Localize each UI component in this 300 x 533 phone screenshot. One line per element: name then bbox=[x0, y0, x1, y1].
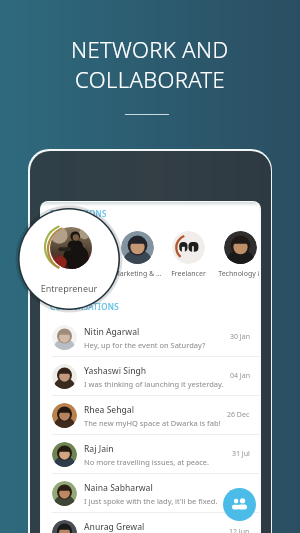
staticText: Naina Sabharwal bbox=[84, 482, 153, 494]
button[interactable]: Anurag Grewal bbox=[41, 513, 259, 533]
staticText: Hey, up for the event on Saturday? bbox=[84, 340, 206, 350]
button[interactable]: Technology & bbox=[214, 231, 259, 279]
staticText: I just spoke with the lady, it'll be fix… bbox=[84, 496, 218, 506]
staticText: 30 Jan bbox=[230, 332, 250, 342]
staticText: Marketing & ... bbox=[113, 269, 162, 279]
staticText: 26 Dec bbox=[227, 410, 250, 420]
staticText: Raj Jain bbox=[84, 443, 114, 455]
staticText: PROFESSIONS bbox=[50, 208, 107, 219]
button[interactable]: Nitin Agarwal bbox=[41, 318, 259, 357]
staticText: No more travelling issues, at peace. bbox=[84, 457, 210, 467]
staticText: 24 Jun bbox=[229, 488, 250, 498]
button[interactable]: New group bbox=[223, 488, 256, 521]
staticText: I was thinking of launching it yesterday… bbox=[84, 379, 224, 389]
staticText: Entrepreneur bbox=[39, 282, 99, 294]
button[interactable]: Rhea Sehgal bbox=[41, 396, 259, 435]
staticText: Rhea Sehgal bbox=[84, 404, 134, 416]
button[interactable] bbox=[50, 227, 92, 269]
button[interactable]: Yashaswi Singh bbox=[41, 357, 259, 396]
button[interactable]: Raj Jain bbox=[41, 435, 259, 474]
staticText: The new myHQ space at Dwarka is fab! bbox=[84, 418, 221, 428]
staticText: CONVERSATIONS bbox=[50, 301, 120, 312]
staticText: 04 Jan bbox=[230, 371, 250, 381]
button[interactable]: Marketing & ... bbox=[111, 231, 163, 279]
staticText: 31 Jul bbox=[232, 449, 250, 459]
staticText: Anurag Grewal bbox=[84, 521, 145, 533]
button[interactable]: Naina Sabharwal bbox=[41, 474, 259, 513]
staticText: Yashaswi Singh bbox=[84, 365, 147, 377]
button[interactable]: Entrepreneur bbox=[59, 231, 111, 279]
staticText: Technology & bbox=[218, 269, 259, 279]
staticText: NETWORK AND bbox=[71, 34, 229, 64]
staticText: Freelancer bbox=[171, 269, 206, 279]
button[interactable]: Freelancer bbox=[162, 231, 214, 279]
staticText: Nitin Agarwal bbox=[84, 326, 140, 338]
staticText: COLLABORATE bbox=[75, 64, 226, 94]
staticText: 12 Jun bbox=[229, 527, 250, 533]
